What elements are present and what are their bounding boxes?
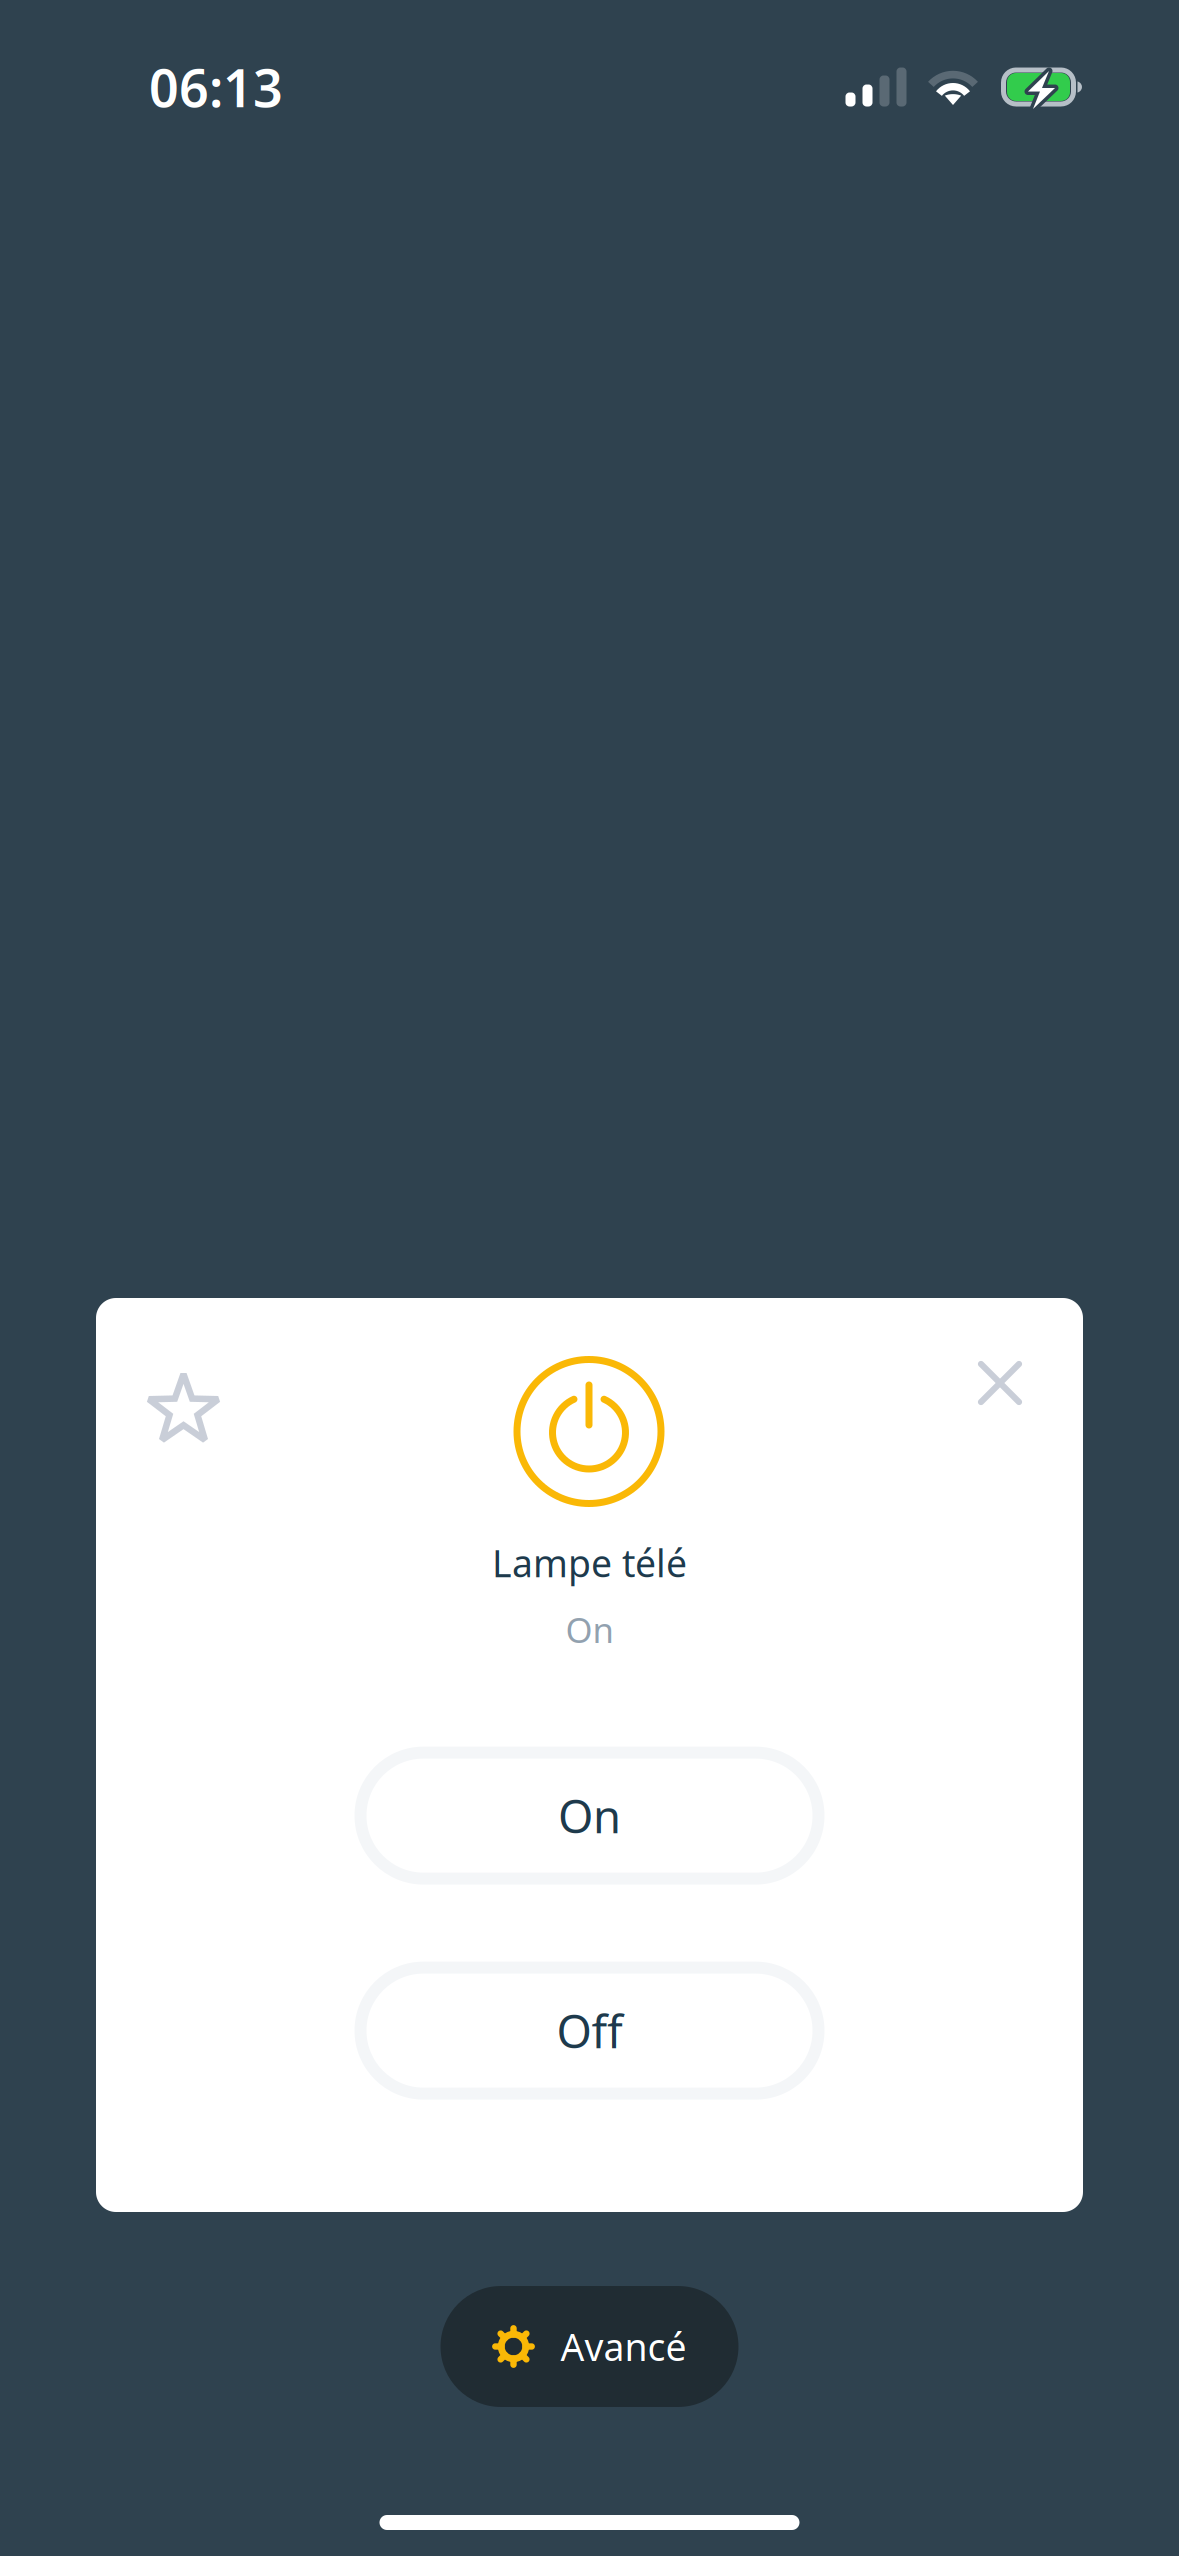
staticText: Off [556,2000,622,2061]
staticText: Lampe télé [492,1538,687,1588]
staticText: On [565,1607,613,1653]
button[interactable]: Off [354,1962,824,2100]
button[interactable]: Ajouter aux favoris [146,1369,222,1449]
staticText: Avancé [560,2322,686,2371]
staticText: On [558,1785,621,1846]
button[interactable]: On [354,1747,824,1885]
button[interactable]: Avancé [440,2286,738,2407]
button[interactable]: Fermer [977,1360,1023,1406]
staticText: 06:13 [149,52,283,122]
